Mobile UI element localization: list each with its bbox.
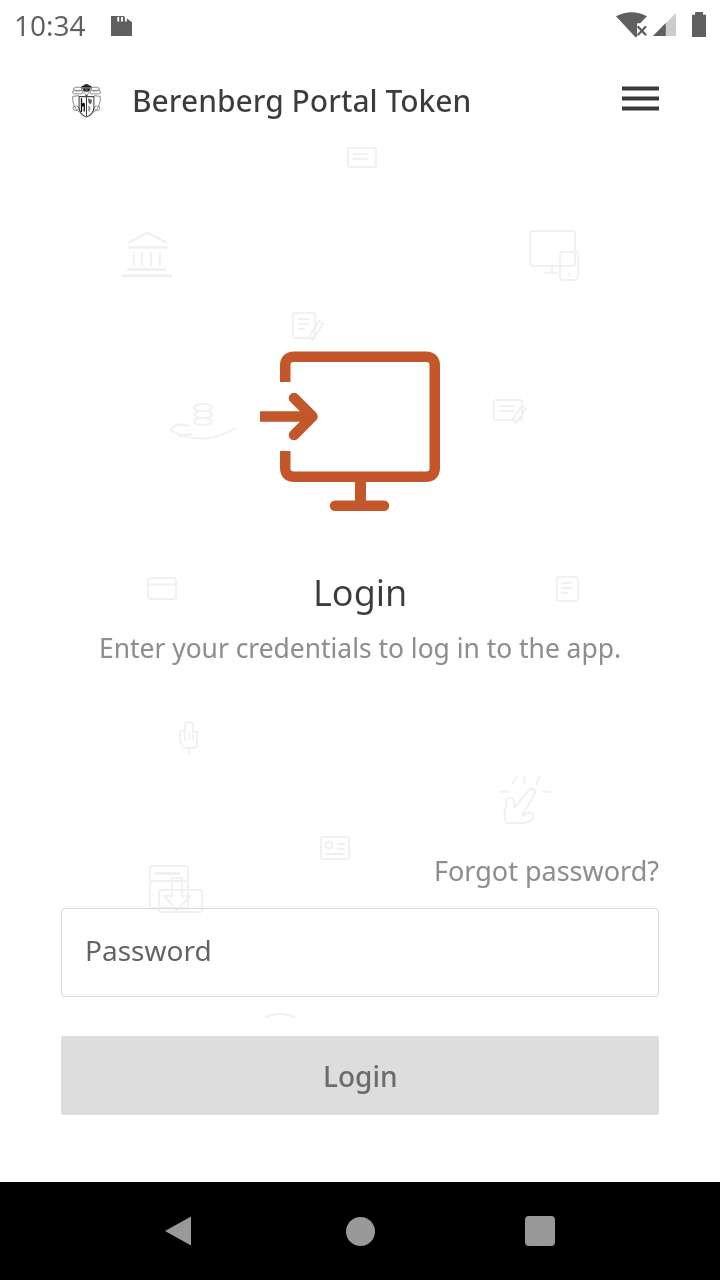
button[interactable]: Menu	[608, 67, 672, 131]
staticText: Password	[85, 931, 212, 969]
staticText: Berenberg Portal Token	[132, 80, 472, 121]
button[interactable]: Login	[61, 1036, 659, 1115]
button[interactable]: Password	[61, 908, 659, 997]
staticText: Enter your credentials to log in to the …	[99, 630, 621, 666]
staticText: Login	[313, 568, 408, 617]
button[interactable]: Back	[118, 1182, 238, 1280]
button[interactable]: Recents	[480, 1182, 600, 1280]
button[interactable]: Home	[300, 1182, 420, 1280]
staticText: 10:34	[14, 6, 86, 44]
staticText: Login	[323, 1057, 398, 1095]
button[interactable]: Forgot password?	[428, 848, 666, 893]
staticText: Forgot password?	[434, 852, 660, 889]
